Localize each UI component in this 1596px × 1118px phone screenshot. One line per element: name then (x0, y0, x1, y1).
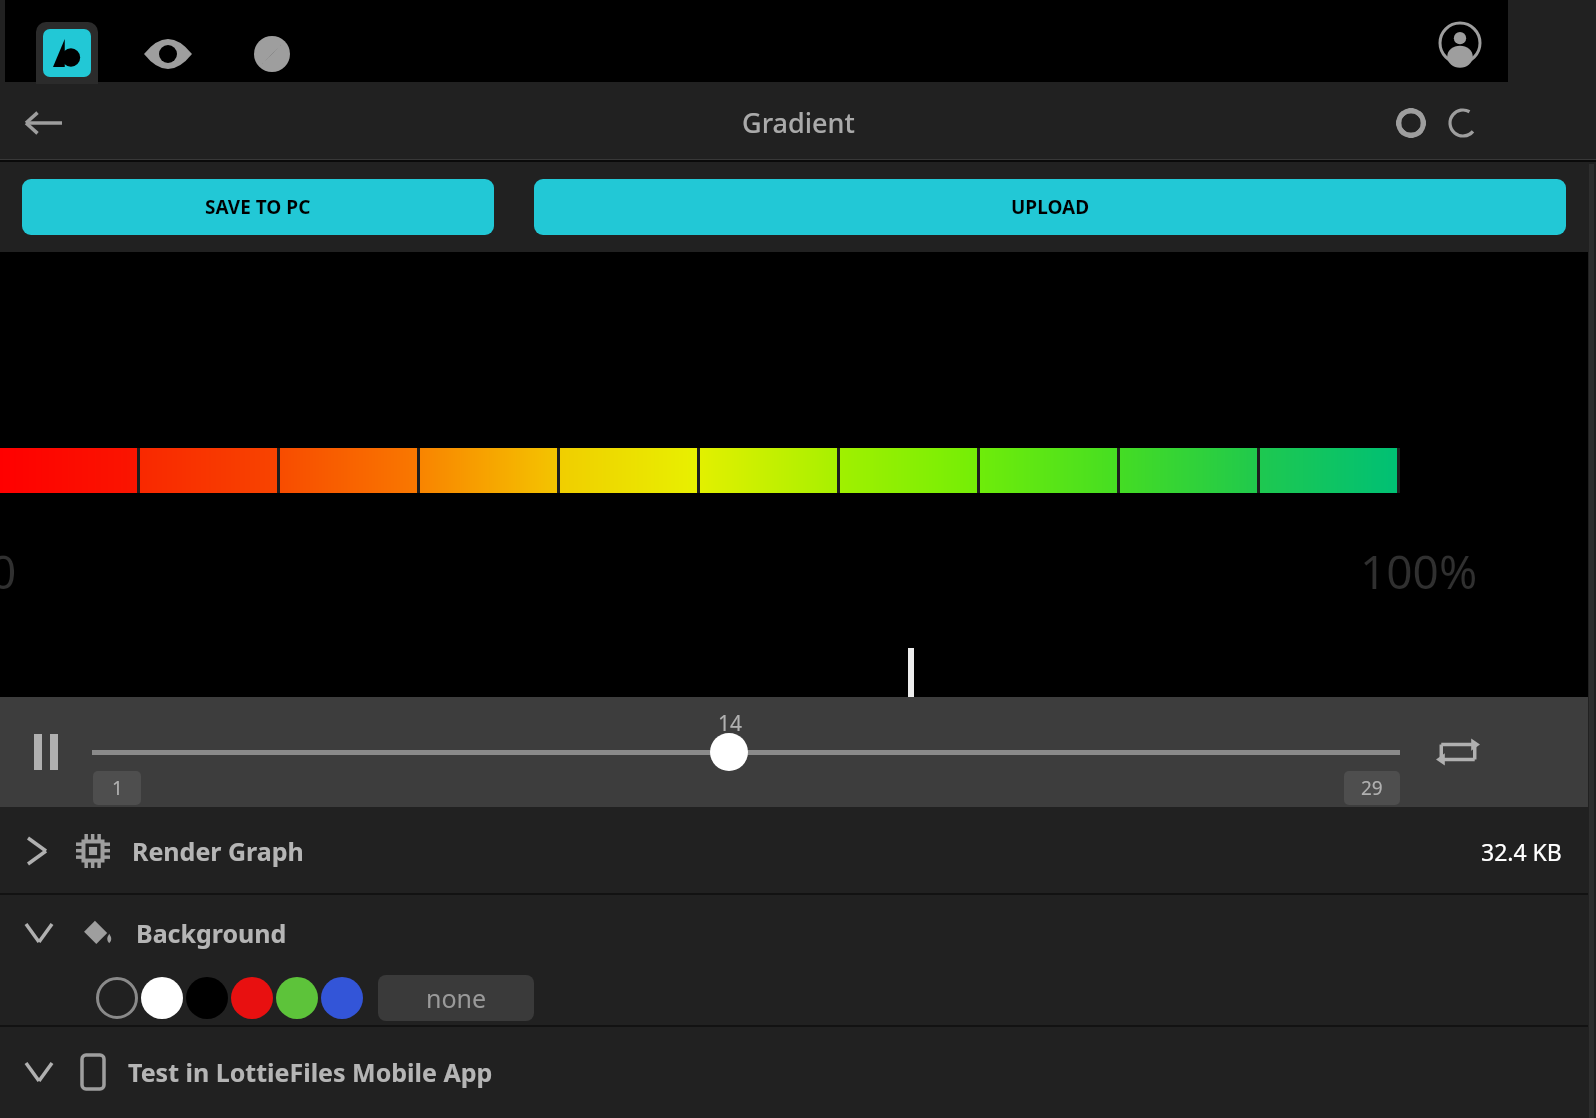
staticText: SAVE TO PC (205, 194, 311, 220)
staticText: UPLOAD (1011, 194, 1090, 220)
button[interactable]: Color swatch (186, 977, 228, 1019)
button[interactable]: Color swatch (321, 977, 363, 1019)
button[interactable]: Account (1432, 15, 1488, 71)
button[interactable]: Preview (140, 26, 196, 82)
button[interactable]: No color (96, 977, 138, 1019)
staticText: 32.4 KB (1481, 836, 1562, 867)
staticText: 14 (718, 709, 743, 738)
button[interactable]: Loop (1430, 724, 1486, 780)
staticText: Render Graph (132, 834, 304, 868)
staticText: 100% (1360, 540, 1478, 603)
button[interactable]: Background (0, 895, 1588, 971)
button[interactable]: none (378, 975, 534, 1021)
button[interactable]: Pause (18, 724, 74, 780)
button[interactable]: Seek (710, 733, 748, 771)
staticText: 0 (0, 540, 17, 603)
button[interactable]: Color swatch (276, 977, 318, 1019)
staticText: Gradient (742, 104, 855, 141)
button[interactable]: SAVE TO PC (22, 179, 494, 235)
button[interactable]: Color swatch (141, 977, 183, 1019)
button[interactable]: Color swatch (231, 977, 273, 1019)
button[interactable]: Explore (244, 26, 300, 82)
staticText: Background (136, 916, 287, 950)
staticText: none (426, 981, 487, 1015)
button[interactable]: Back (18, 97, 70, 149)
staticText: 29 (1361, 775, 1383, 801)
staticText: 1 (112, 775, 123, 801)
button[interactable]: Render Graph (0, 807, 1588, 895)
button[interactable]: Settings (1388, 100, 1434, 146)
button[interactable]: Test in LottieFiles Mobile App (0, 1025, 1588, 1118)
staticText: Test in LottieFiles Mobile App (128, 1055, 493, 1089)
button[interactable]: Edit (36, 22, 98, 84)
button[interactable]: UPLOAD (534, 179, 1566, 235)
button[interactable]: Refresh (1440, 100, 1486, 146)
